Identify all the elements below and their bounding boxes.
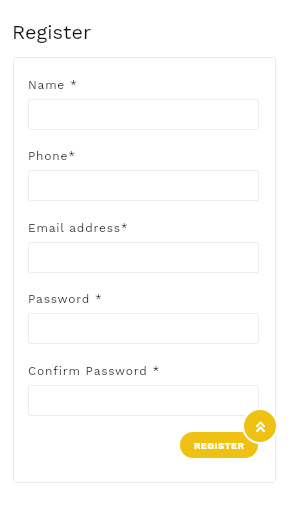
staticText: REGISTER (194, 440, 245, 451)
button[interactable] (28, 170, 259, 201)
button[interactable]: Scroll to top (244, 410, 276, 442)
button[interactable] (28, 385, 259, 416)
staticText: Phone* (28, 149, 76, 163)
staticText: Name * (28, 78, 78, 92)
button[interactable]: REGISTER (180, 432, 258, 458)
staticText: Email address* (28, 221, 129, 235)
button[interactable] (28, 99, 259, 130)
button[interactable] (28, 313, 259, 344)
staticText: Confirm Password * (28, 364, 161, 378)
staticText: Register (12, 20, 92, 43)
button[interactable] (28, 242, 259, 273)
staticText: Password * (28, 292, 103, 306)
